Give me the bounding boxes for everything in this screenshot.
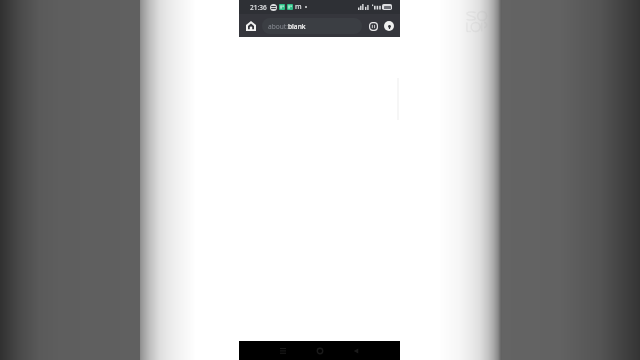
button[interactable]: Recents xyxy=(276,344,290,358)
button[interactable]: Tabs xyxy=(368,21,378,31)
button[interactable]: about: xyxy=(262,18,362,34)
button[interactable]: Back xyxy=(349,344,363,358)
button[interactable]: Home xyxy=(244,19,257,32)
button[interactable]: Menu xyxy=(384,21,394,31)
staticText: about: xyxy=(268,22,288,31)
staticText: m xyxy=(295,2,302,12)
staticText: blank xyxy=(288,22,306,31)
button[interactable]: Home xyxy=(313,344,327,358)
staticText: 21:36 xyxy=(250,3,267,12)
